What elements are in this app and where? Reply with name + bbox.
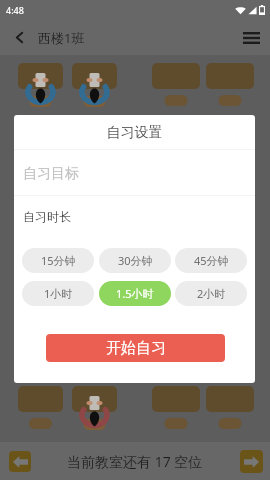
button[interactable]: 15分钟 [22, 248, 94, 273]
button[interactable]: 1.5小时 [99, 281, 171, 306]
staticText: 1.5小时 [116, 286, 154, 301]
button[interactable]: 1小时 [22, 281, 94, 306]
button[interactable]: 2小时 [175, 281, 247, 306]
staticText: 30分钟 [118, 253, 153, 268]
staticText: 2小时 [197, 286, 226, 301]
button[interactable]: Menu [236, 20, 266, 55]
button[interactable]: Next classroom [240, 450, 263, 473]
staticText: 45分钟 [194, 253, 229, 268]
staticText: 4:48 [6, 4, 24, 16]
staticText: 当前教室还有 17 空位 [67, 452, 203, 471]
staticText: 西楼1班 [38, 29, 85, 47]
staticText: 自习设置 [14, 124, 255, 142]
button[interactable]: 30分钟 [99, 248, 171, 273]
staticText: 15分钟 [41, 253, 76, 268]
staticText: 1小时 [44, 286, 73, 301]
button[interactable]: 开始自习 [46, 334, 225, 362]
staticText: 开始自习 [106, 339, 166, 358]
button[interactable]: Back [6, 20, 32, 55]
staticText: 自习目标 [23, 165, 79, 183]
button[interactable]: Previous classroom [9, 451, 31, 472]
button[interactable]: 45分钟 [175, 248, 247, 273]
staticText: 自习时长 [23, 209, 71, 224]
